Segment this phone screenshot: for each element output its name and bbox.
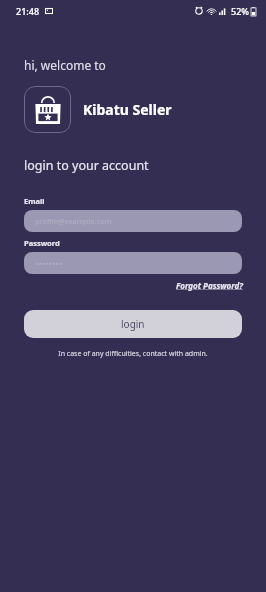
staticText: Kibatu Seller: [83, 100, 172, 119]
staticText: profile@example.com: [35, 216, 112, 226]
button[interactable]: ••••••••: [24, 252, 242, 274]
staticText: Forgot Password?: [176, 280, 243, 291]
staticText: Email: [24, 196, 45, 206]
staticText: 52%: [231, 5, 249, 17]
staticText: ••••••••: [35, 257, 63, 269]
button[interactable]: Forgot Password?: [176, 280, 243, 291]
staticText: hi, welcome to: [24, 57, 106, 73]
staticText: login to your account: [24, 157, 149, 174]
button[interactable]: login: [24, 310, 242, 338]
staticText: 21:48: [16, 5, 40, 17]
staticText: In case of any difficulties, contact wit…: [0, 349, 266, 359]
button[interactable]: profile@example.com: [24, 210, 242, 232]
staticText: login: [121, 317, 145, 331]
staticText: Password: [24, 238, 60, 248]
